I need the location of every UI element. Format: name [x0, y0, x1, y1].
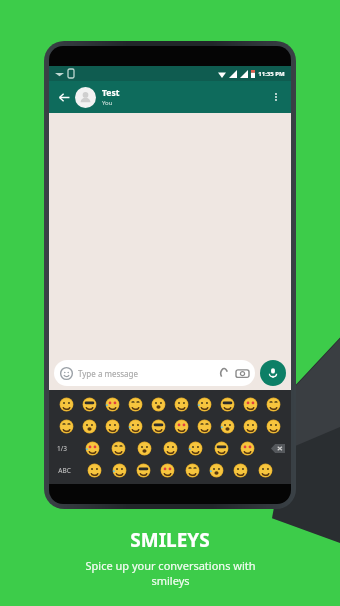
button[interactable]: Type a message [54, 360, 255, 386]
button[interactable]: Record voice message [260, 360, 286, 386]
button[interactable] [135, 462, 152, 479]
button[interactable] [242, 396, 259, 413]
button[interactable] [104, 396, 121, 413]
staticText: Type a message [78, 368, 139, 379]
button[interactable] [81, 396, 98, 413]
button[interactable] [162, 440, 179, 457]
staticText: SMILEYS [130, 527, 210, 553]
button[interactable]: Backspace [265, 437, 291, 459]
button[interactable] [187, 440, 204, 457]
staticText: 1/3 [57, 444, 67, 453]
button[interactable] [136, 440, 153, 457]
button[interactable] [213, 440, 230, 457]
button[interactable] [239, 440, 256, 457]
button[interactable]: 1/3 [49, 437, 75, 459]
button[interactable] [159, 462, 176, 479]
button[interactable] [257, 462, 274, 479]
button[interactable] [173, 396, 190, 413]
button[interactable] [196, 418, 213, 435]
staticText: You [102, 99, 113, 107]
button[interactable] [173, 418, 190, 435]
staticText: Spice up your conversations with smileys [85, 558, 256, 588]
button[interactable] [81, 418, 98, 435]
button[interactable] [104, 418, 121, 435]
button[interactable] [184, 462, 201, 479]
button[interactable] [84, 440, 101, 457]
button[interactable]: More options [267, 88, 285, 106]
button[interactable] [208, 462, 225, 479]
button[interactable] [127, 418, 144, 435]
button[interactable] [196, 396, 213, 413]
button[interactable] [86, 462, 103, 479]
button[interactable] [58, 396, 75, 413]
button[interactable]: Back [55, 88, 73, 106]
button[interactable]: Camera [236, 367, 249, 380]
button[interactable] [232, 462, 249, 479]
button[interactable] [150, 396, 167, 413]
button[interactable] [265, 418, 282, 435]
button[interactable] [127, 396, 144, 413]
button[interactable] [111, 462, 128, 479]
button[interactable]: ABC [49, 459, 79, 481]
button[interactable] [58, 418, 75, 435]
button[interactable] [265, 396, 282, 413]
staticText: Test [102, 87, 120, 99]
button[interactable] [110, 440, 127, 457]
button[interactable]: Attach [218, 367, 231, 380]
button[interactable] [219, 418, 236, 435]
staticText: ABC [58, 466, 71, 475]
button[interactable] [219, 396, 236, 413]
staticText: 11:35 PM [258, 70, 285, 78]
button[interactable] [242, 418, 259, 435]
button[interactable] [150, 418, 167, 435]
